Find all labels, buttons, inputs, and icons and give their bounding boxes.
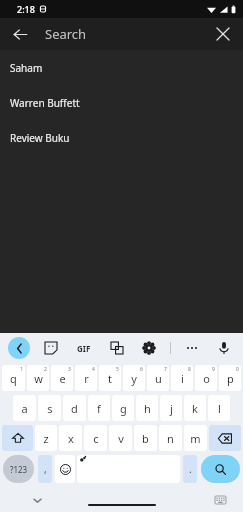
staticText: d: [71, 401, 78, 416]
button[interactable]: r: [75, 365, 97, 391]
button[interactable]: Expand toolbar: [8, 337, 30, 359]
staticText: k: [192, 401, 198, 416]
button[interactable]: p: [219, 365, 241, 391]
staticText: p: [227, 371, 234, 386]
staticText: Review Buku: [10, 131, 70, 145]
staticText: 2: [44, 366, 47, 373]
button[interactable]: Backspace: [209, 425, 241, 451]
button[interactable]: Settings: [138, 337, 160, 359]
button[interactable]: i: [171, 365, 193, 391]
button[interactable]: Search: [201, 455, 240, 483]
staticText: i: [181, 371, 184, 386]
button[interactable]: GIF: [72, 336, 96, 360]
button[interactable]: l: [208, 395, 230, 421]
staticText: q: [10, 371, 17, 386]
button[interactable]: .: [183, 455, 197, 483]
staticText: f: [97, 401, 101, 416]
staticText: ?123: [10, 464, 28, 475]
staticText: t: [108, 371, 112, 386]
button[interactable]: z: [35, 425, 57, 451]
staticText: Warren Buffett: [10, 96, 80, 110]
staticText: 0: [236, 366, 239, 373]
button[interactable]: ,: [38, 455, 52, 483]
staticText: 6: [140, 366, 143, 373]
button[interactable]: Voice input: [213, 337, 235, 359]
button[interactable]: f: [88, 395, 110, 421]
staticText: r: [84, 371, 89, 386]
staticText: 1: [20, 366, 23, 373]
button[interactable]: More options: [181, 337, 203, 359]
button[interactable]: Hide keyboard: [28, 491, 46, 509]
staticText: u: [155, 371, 162, 386]
button[interactable]: o: [195, 365, 217, 391]
button[interactable]: ?123: [3, 455, 34, 483]
staticText: j: [170, 401, 173, 416]
button[interactable]: Space: [77, 455, 180, 483]
staticText: v: [118, 431, 124, 446]
staticText: 7: [164, 366, 167, 373]
staticText: m: [190, 431, 201, 446]
staticText: 8: [188, 366, 191, 373]
button[interactable]: d: [63, 395, 86, 421]
staticText: z: [43, 431, 49, 446]
staticText: 3: [68, 366, 71, 373]
staticText: n: [167, 431, 174, 446]
staticText: e: [59, 371, 66, 386]
staticText: 4: [92, 366, 95, 373]
staticText: b: [142, 431, 149, 446]
button[interactable]: k: [184, 395, 206, 421]
staticText: w: [34, 371, 43, 386]
staticText: 2:18: [17, 3, 35, 15]
button[interactable]: y: [123, 365, 145, 391]
button[interactable]: Emoji: [55, 455, 75, 483]
staticText: l: [218, 401, 221, 416]
staticText: Search: [45, 25, 87, 43]
button[interactable]: Back: [6, 20, 34, 48]
button[interactable]: v: [109, 425, 132, 451]
button[interactable]: b: [134, 425, 157, 451]
staticText: ,: [44, 462, 47, 476]
staticText: c: [93, 431, 99, 446]
staticText: GIF: [77, 343, 91, 354]
staticText: y: [131, 371, 137, 386]
button[interactable]: Warren Buffett: [0, 85, 243, 120]
button[interactable]: w: [27, 365, 49, 391]
staticText: g: [120, 401, 127, 416]
button[interactable]: a: [13, 395, 36, 421]
button[interactable]: j: [160, 395, 182, 421]
button[interactable]: Translate: [106, 337, 128, 359]
button[interactable]: c: [84, 425, 107, 451]
button[interactable]: n: [159, 425, 182, 451]
button[interactable]: t: [99, 365, 121, 391]
button[interactable]: g: [112, 395, 134, 421]
staticText: s: [47, 401, 53, 416]
button[interactable]: s: [38, 395, 61, 421]
button[interactable]: Switch keyboard: [211, 491, 229, 509]
button[interactable]: Stickers: [40, 337, 62, 359]
staticText: Saham: [10, 61, 43, 75]
button[interactable]: Saham: [0, 50, 243, 85]
staticText: h: [144, 401, 151, 416]
button[interactable]: h: [136, 395, 158, 421]
button[interactable]: m: [184, 425, 207, 451]
staticText: o: [203, 371, 210, 386]
staticText: 9: [212, 366, 215, 373]
button[interactable]: e: [51, 365, 73, 391]
button[interactable]: q: [2, 365, 25, 391]
button[interactable]: u: [147, 365, 169, 391]
staticText: 5: [116, 366, 119, 373]
staticText: .: [189, 462, 192, 476]
button[interactable]: x: [59, 425, 82, 451]
button[interactable]: Shift: [2, 425, 33, 451]
staticText: a: [21, 401, 28, 416]
staticText: x: [68, 431, 74, 446]
button[interactable]: Review Buku: [0, 120, 243, 155]
button[interactable]: Clear: [209, 20, 237, 48]
